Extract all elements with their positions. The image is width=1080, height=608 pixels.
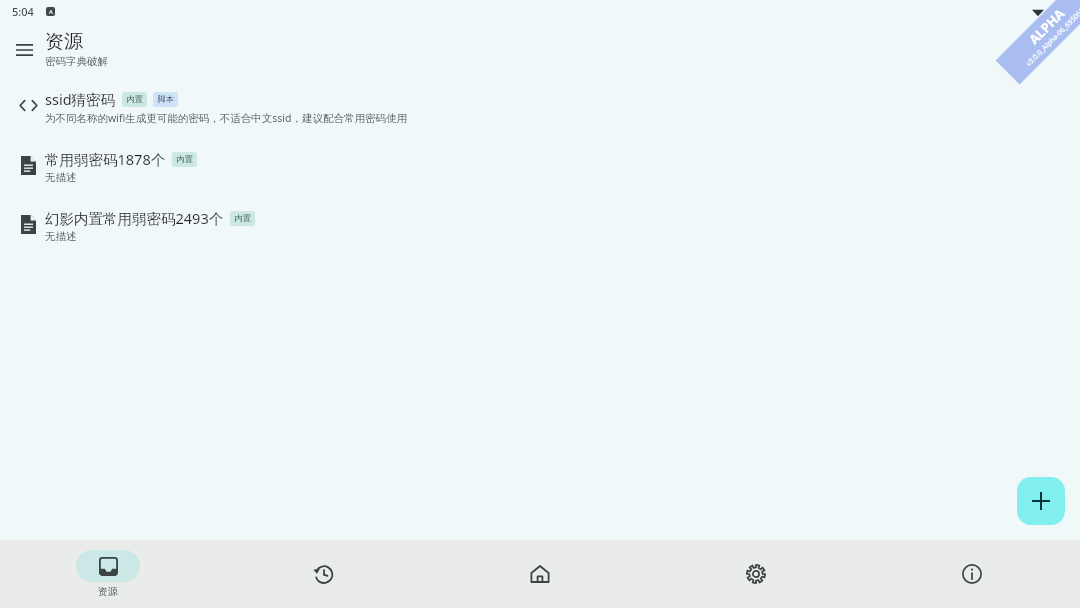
staticText: 内置 [234, 213, 251, 224]
button[interactable]: ssid猜密码 [0, 86, 1080, 127]
button[interactable]: 常用弱密码1878个 [0, 146, 1080, 186]
staticText: 密码字典破解 [45, 55, 108, 68]
staticText: 内置 [176, 154, 193, 165]
staticText: 常用弱密码1878个 [45, 149, 166, 169]
staticText: 无描述 [45, 171, 77, 184]
staticText: 为不同名称的wifi生成更可能的密码，不适合中文ssid，建议配合常用密码使用 [45, 111, 408, 125]
staticText: ssid猜密码 [45, 89, 116, 109]
button[interactable]: 资源 [0, 540, 216, 608]
button[interactable]: 主页 [432, 540, 648, 608]
button[interactable]: 幻影内置常用弱密码2493个 [0, 205, 1080, 245]
staticText: A [49, 8, 53, 16]
staticText: 资源 [45, 30, 83, 54]
staticText: 脚本 [157, 94, 174, 105]
button[interactable]: 设置 [648, 540, 864, 608]
button[interactable]: Menu [6, 32, 42, 68]
staticText: v3.0.0_Alpha-06_695051a [1024, 3, 1080, 69]
staticText: 资源 [98, 585, 118, 598]
staticText: 5:04 [12, 4, 34, 19]
staticText: 无描述 [45, 230, 77, 243]
staticText: 内置 [126, 94, 143, 105]
staticText: 幻影内置常用弱密码2493个 [45, 208, 224, 228]
staticText: ALPHA [1024, 4, 1068, 48]
button[interactable]: Add [1017, 477, 1065, 525]
button[interactable]: 历史 [216, 540, 432, 608]
button[interactable]: 关于 [864, 540, 1080, 608]
